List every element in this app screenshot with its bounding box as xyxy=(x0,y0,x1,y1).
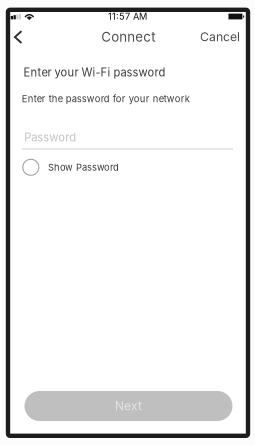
staticText: Show Password xyxy=(48,162,119,173)
staticText: Enter the password for your network xyxy=(22,93,190,104)
staticText: Enter your Wi-Fi password xyxy=(23,66,165,79)
staticText: Password xyxy=(24,131,76,144)
staticText: Connect xyxy=(101,29,155,45)
staticText: Cancel xyxy=(200,29,240,44)
button[interactable]: Next xyxy=(24,391,232,421)
button[interactable]: Back xyxy=(5,24,31,50)
staticText: 11:57 AM xyxy=(108,11,147,22)
button[interactable]: Show Password xyxy=(22,156,124,178)
staticText: Next xyxy=(115,399,142,413)
button[interactable]: Cancel xyxy=(196,25,244,49)
